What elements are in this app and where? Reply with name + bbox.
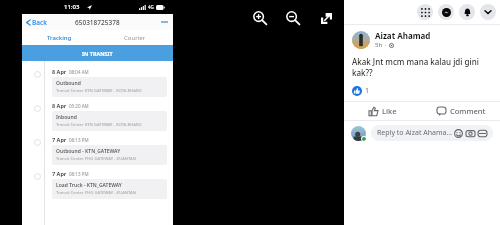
button[interactable]: 7 Apr: [22, 133, 173, 167]
button[interactable]: Back: [26, 18, 47, 27]
button[interactable]: Tracking: [22, 30, 97, 45]
button[interactable]: Aizat Ahamad: [352, 30, 492, 49]
staticText: IN TRANSIT: [82, 50, 113, 57]
staticText: 8 Apr: [52, 68, 67, 75]
button[interactable]: Fullscreen: [316, 8, 336, 28]
staticText: 08:04 AM: [69, 69, 89, 75]
staticText: Like: [382, 106, 397, 116]
staticText: 8 Apr: [52, 102, 67, 109]
button[interactable]: Like: [344, 102, 422, 120]
staticText: 7 Apr: [52, 170, 67, 177]
staticText: 08:13 PM: [69, 171, 89, 177]
staticText: Comment: [450, 106, 486, 116]
staticText: Courier: [124, 34, 146, 42]
button[interactable]: Zoom in: [250, 8, 270, 28]
staticText: Reply to Aizat Ahama…: [377, 128, 454, 138]
button[interactable]: More options: [160, 18, 168, 26]
staticText: Transit Center PHG GATEWAY - KUANTAN: [56, 190, 136, 196]
button[interactable]: 1: [352, 86, 370, 96]
button[interactable]: Messenger: [438, 4, 454, 20]
staticText: Tracking: [47, 34, 72, 42]
button[interactable]: Sticker: [478, 129, 487, 138]
staticText: Aizat Ahamad: [375, 30, 431, 41]
staticText: 1: [365, 86, 370, 96]
staticText: Outbound: [56, 80, 81, 87]
staticText: Outbound - KTN_GATEWAY: [56, 148, 121, 155]
button[interactable]: Notifications: [459, 4, 475, 20]
staticText: Back: [32, 18, 47, 27]
staticText: 08:13 PM: [69, 137, 89, 143]
button[interactable]: Camera: [466, 129, 475, 138]
button[interactable]: Account: [480, 4, 496, 20]
button[interactable]: Comment: [422, 102, 500, 120]
staticText: Transit Center KTN GATEWAY - KOTA BHARU: [56, 88, 142, 94]
staticText: 650318725378: [75, 18, 120, 27]
staticText: Akak Jnt mcm mana kalau jdi gini kak??: [352, 56, 492, 78]
button[interactable]: Emoji: [454, 129, 463, 138]
button[interactable]: Courier: [97, 30, 173, 45]
button[interactable]: Reply to Aizat Ahama…: [371, 125, 493, 141]
staticText: 7 Apr: [52, 136, 67, 143]
staticText: ·: [385, 41, 387, 49]
staticText: Inbound: [56, 114, 77, 121]
button[interactable]: 8 Apr: [22, 99, 173, 133]
staticText: Transit Center PHG GATEWAY - KUANTAN: [56, 156, 136, 162]
button[interactable]: Zoom out: [283, 8, 303, 28]
staticText: 5h: [375, 41, 383, 49]
staticText: Transit Center KTN GATEWAY - KOTA BHARU: [56, 122, 142, 128]
staticText: 11:03: [64, 3, 80, 11]
staticText: 4G: [148, 4, 154, 10]
staticText: Load Truck - KTN_GATEWAY: [56, 182, 122, 189]
button[interactable]: 7 Apr: [22, 167, 173, 201]
button[interactable]: Menu: [417, 4, 433, 20]
staticText: 05:20 AM: [69, 103, 89, 109]
button[interactable]: 8 Apr: [22, 65, 173, 99]
